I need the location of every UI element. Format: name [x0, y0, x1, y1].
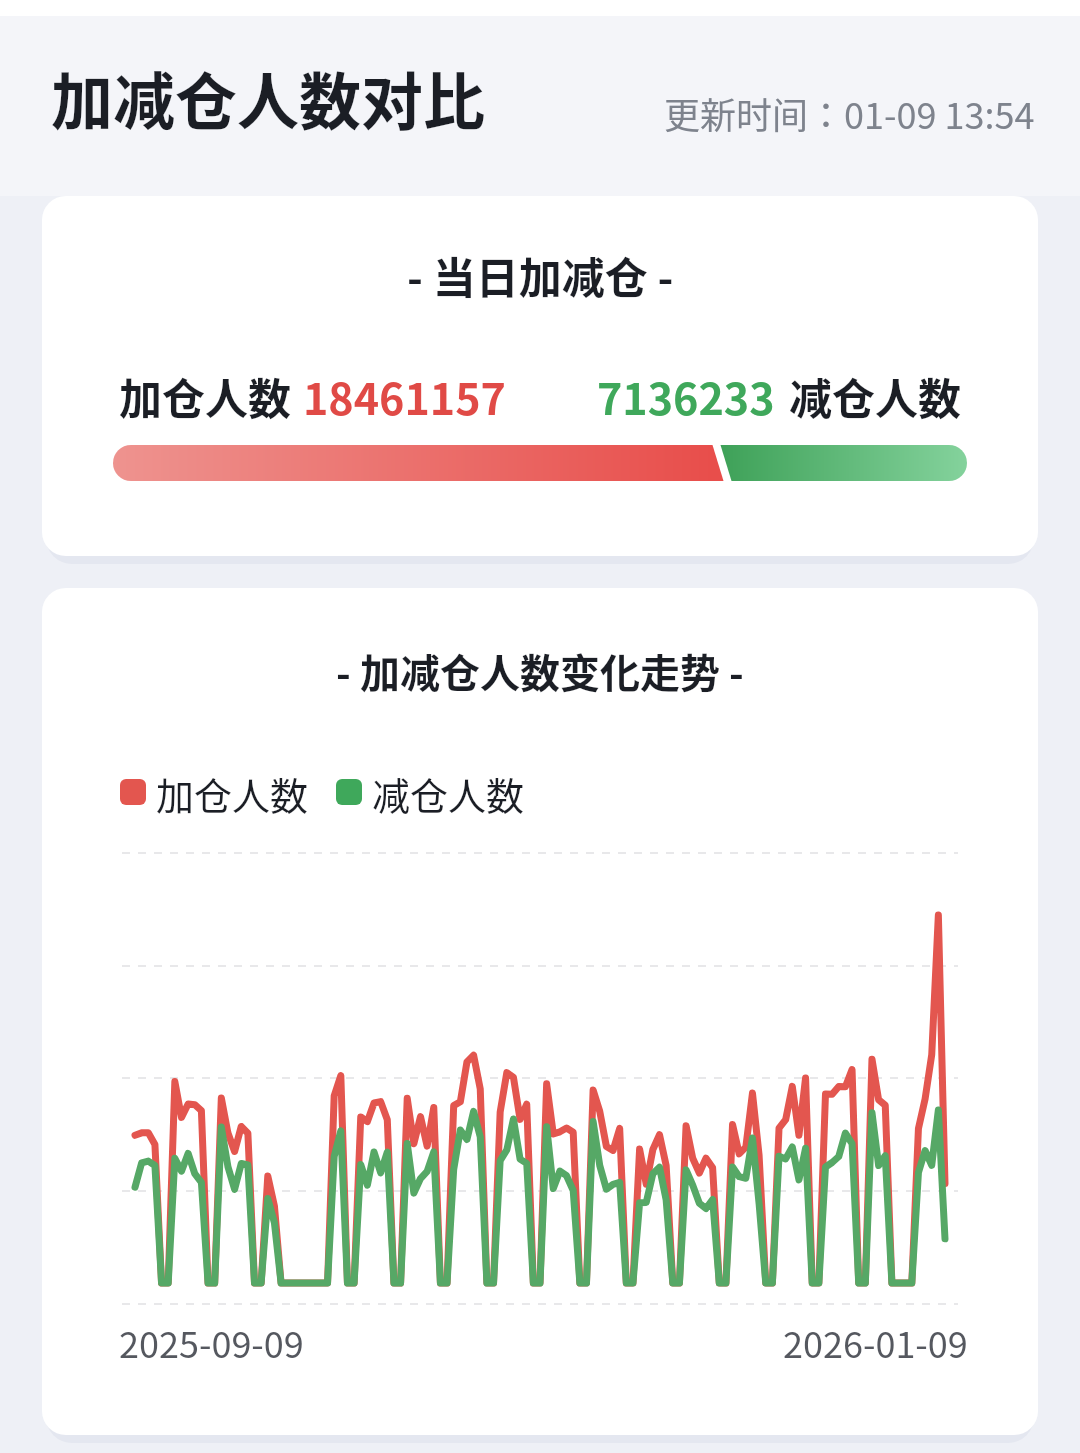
staticText: 更新时间：01-09 13:54 — [664, 87, 1035, 139]
staticText: - 加减仓人数变化走势 - — [336, 642, 744, 700]
staticText: 2026-01-09 — [783, 1316, 968, 1368]
staticText: 加减仓人数对比 — [51, 53, 486, 143]
staticText: 18461157 — [303, 365, 506, 425]
staticText: 减仓人数 — [372, 766, 525, 818]
staticText: 减仓人数 — [789, 365, 961, 425]
staticText: 加仓人数 — [119, 365, 291, 425]
staticText: 加仓人数 — [156, 766, 309, 818]
button[interactable]: - 当日加减仓 - — [42, 196, 1038, 556]
staticText: 2025-09-09 — [119, 1316, 304, 1368]
staticText: - 当日加减仓 - — [407, 244, 674, 306]
staticText: 7136233 — [597, 365, 775, 425]
button[interactable]: - 加减仓人数变化走势 - — [42, 588, 1038, 1435]
